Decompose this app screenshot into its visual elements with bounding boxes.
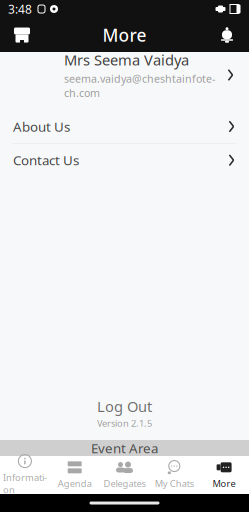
button[interactable]: Home — [0, 18, 44, 52]
staticText: Information — [3, 471, 47, 496]
button[interactable]: Agenda — [50, 456, 100, 494]
button[interactable]: About Us — [0, 110, 249, 143]
staticText: Log Out — [97, 397, 152, 416]
staticText: Mrs Seema Vaidya — [64, 50, 189, 70]
button[interactable]: Notifications — [205, 18, 249, 52]
staticText: More — [213, 477, 236, 490]
staticText: About Us — [13, 118, 70, 135]
button[interactable]: Mrs Seema Vaidya — [0, 52, 249, 98]
staticText: Delegates — [103, 477, 145, 490]
staticText: Event Area — [91, 439, 158, 457]
staticText: More — [102, 23, 146, 46]
button[interactable]: Information — [0, 456, 50, 494]
staticText: Contact Us — [13, 151, 79, 169]
staticText: My Chats — [155, 477, 194, 490]
staticText: Agenda — [58, 477, 92, 490]
button[interactable]: Delegates — [100, 456, 149, 494]
button[interactable]: Event Area — [0, 440, 249, 456]
staticText: Version 2.1.5 — [97, 417, 152, 429]
button[interactable]: My Chats — [149, 456, 199, 494]
button[interactable]: Contact Us — [0, 144, 249, 177]
button[interactable]: Log Out — [0, 398, 249, 428]
button[interactable]: More — [199, 456, 249, 494]
staticText: seema.vaidya@cheshtainfotech.com — [64, 72, 215, 100]
staticText: 3:48 — [8, 1, 32, 17]
